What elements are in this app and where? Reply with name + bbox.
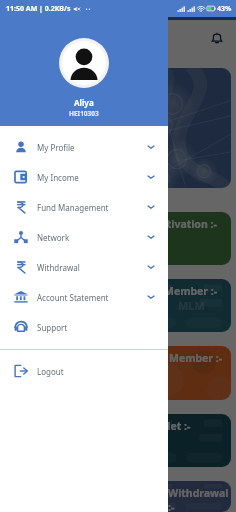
staticText: Fund Management — [37, 202, 109, 213]
staticText: My Profile — [37, 142, 75, 153]
staticText: Network — [37, 232, 70, 243]
staticText: 43% — [217, 4, 232, 14]
button[interactable]: Support — [0, 312, 168, 342]
staticText: Account Statement — [37, 292, 109, 303]
staticText: Support — [37, 322, 68, 333]
staticText: MLM — [178, 298, 205, 313]
staticText: Withdrawal — [37, 262, 80, 273]
staticText: Aliya — [74, 97, 94, 108]
button[interactable]: Member :- — [5, 346, 231, 400]
button[interactable]: Withdrawal — [0, 252, 168, 282]
staticText: HEI10303 — [69, 109, 99, 118]
button[interactable]: Withdrawal :- — [5, 481, 231, 512]
button[interactable]: My Income — [0, 162, 168, 192]
staticText: Member :- — [164, 284, 218, 298]
button[interactable]: Wallet :- — [5, 414, 231, 467]
staticText: Activation :- — [154, 217, 217, 231]
button[interactable]: Activation :- — [5, 212, 231, 265]
staticText: 11:50 AM | 0.2KB/s — [6, 4, 71, 14]
staticText: My Income — [37, 172, 79, 183]
button[interactable]: My Profile — [0, 132, 168, 162]
button[interactable]: Notifications — [206, 27, 228, 49]
button[interactable]: Logout — [0, 356, 168, 386]
staticText: Wallet :- — [148, 419, 191, 433]
staticText: Withdrawal :- — [168, 486, 231, 512]
button[interactable]: Network — [0, 222, 168, 252]
button[interactable]: Account Statement — [0, 282, 168, 312]
button[interactable]: Member :- — [5, 279, 231, 332]
button[interactable] — [5, 68, 231, 188]
staticText: Logout — [37, 366, 64, 377]
staticText: Member :- — [169, 351, 223, 365]
button[interactable]: Fund Management — [0, 192, 168, 222]
